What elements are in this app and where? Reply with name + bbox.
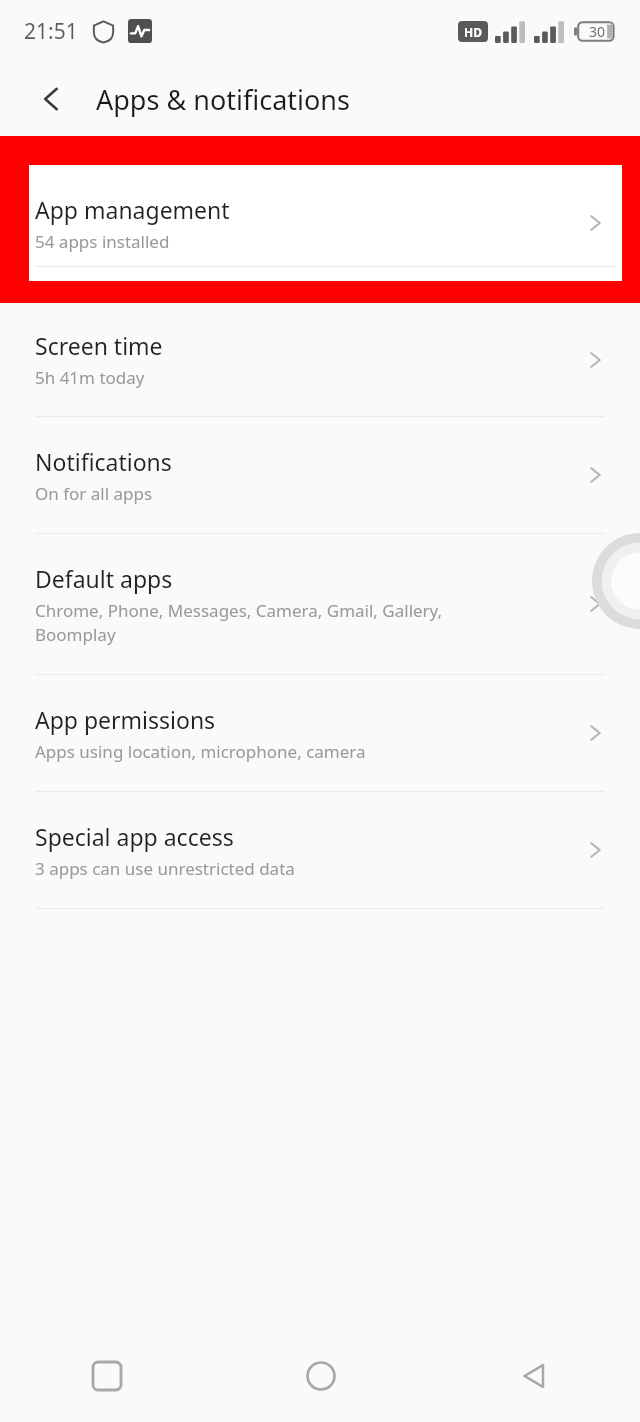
button[interactable]: App permissions <box>0 675 640 791</box>
staticText: 54 apps installed <box>35 230 170 253</box>
staticText: Apps & notifications <box>96 81 350 118</box>
other: Assistive touch <box>592 533 640 629</box>
button[interactable]: Back <box>427 1330 640 1422</box>
staticText: App management <box>35 194 230 225</box>
staticText: Notifications <box>35 446 172 477</box>
staticText: Default apps <box>35 563 173 594</box>
button[interactable]: Special app access <box>0 792 640 908</box>
staticText: Screen time <box>35 330 163 361</box>
button[interactable]: Default apps <box>0 534 640 674</box>
staticText: Apps using location, microphone, camera <box>35 740 366 763</box>
staticText: 30 <box>589 22 606 41</box>
staticText: 21:51 <box>24 17 78 46</box>
staticText: Chrome, Phone, Messages, Camera, Gmail, … <box>35 599 443 646</box>
button[interactable]: Back <box>28 75 76 123</box>
staticText: Special app access <box>35 821 234 852</box>
button[interactable]: App management <box>29 165 622 281</box>
button[interactable]: Recent apps <box>0 1330 214 1422</box>
staticText: 5h 41m today <box>35 366 145 389</box>
staticText: On for all apps <box>35 482 153 505</box>
staticText: App permissions <box>35 704 216 735</box>
button[interactable]: Screen time <box>0 303 640 416</box>
staticText: 3 apps can use unrestricted data <box>35 857 295 880</box>
staticText: HD <box>464 24 482 40</box>
button[interactable]: Notifications <box>0 417 640 533</box>
button[interactable]: Home <box>214 1330 427 1422</box>
